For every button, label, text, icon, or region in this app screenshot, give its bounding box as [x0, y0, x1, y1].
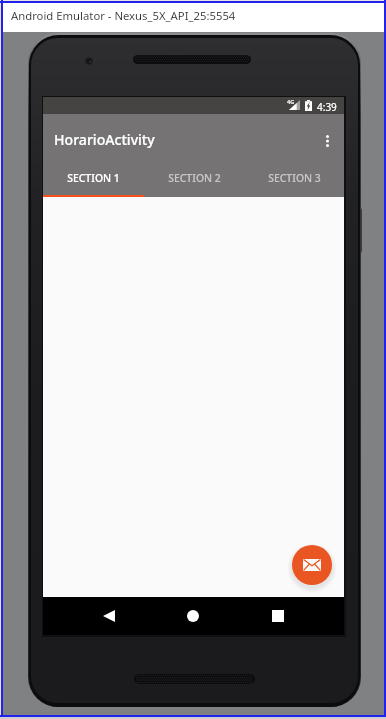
button[interactable]: Home: [177, 597, 209, 635]
staticText: Android Emulator - Nexus_5X_API_25:5554: [11, 8, 236, 23]
staticText: HorarioActivity: [54, 130, 155, 149]
button[interactable]: SECTION 2: [144, 161, 244, 197]
staticText: SECTION 1: [67, 171, 120, 185]
button[interactable]: More options: [308, 114, 344, 161]
button[interactable]: SECTION 1: [43, 161, 144, 197]
staticText: SECTION 2: [168, 171, 221, 185]
button[interactable]: Recents: [262, 597, 294, 635]
button[interactable]: SECTION 3: [244, 161, 344, 197]
staticText: 4:39: [317, 100, 337, 114]
button[interactable]: Back: [93, 597, 125, 635]
staticText: 4G: [287, 98, 295, 106]
staticText: SECTION 3: [268, 171, 321, 185]
button[interactable]: Compose email: [292, 545, 332, 585]
